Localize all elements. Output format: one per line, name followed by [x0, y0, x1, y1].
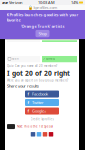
- staticText: Quiz: Can you name all 20 members?: [7, 64, 57, 68]
- staticText: Were you an expert on boy group members?: [7, 79, 68, 82]
- staticText: 10:03 AM: [38, 0, 55, 5]
- staticText: 'Orange Trunk' artists: [20, 24, 64, 29]
- staticText: correct: [46, 57, 55, 60]
- staticText: seen: [12, 57, 19, 60]
- staticText: ▰▰: [2, 0, 8, 5]
- staticText: f: [27, 100, 29, 105]
- staticText: KProfiles launches goodies with your fav…: [6, 12, 78, 23]
- staticText: Facebook: [32, 91, 48, 97]
- button[interactable]: f: [25, 107, 59, 114]
- staticText: f: [27, 91, 29, 97]
- button[interactable]: Share: [49, 132, 53, 136]
- staticText: Share your results: [7, 83, 39, 88]
- button[interactable]: f: [25, 90, 59, 97]
- button[interactable]: Share: [31, 132, 35, 136]
- staticText: Twitter: [32, 100, 44, 105]
- staticText: f: [27, 108, 29, 114]
- staticText: I got 20 of 20 right: [7, 69, 70, 78]
- staticText: 14%: [71, 0, 78, 5]
- button[interactable]: Share: [37, 132, 41, 136]
- staticText: 🔒 kprofiles.com: [27, 5, 57, 10]
- button[interactable]: f: [25, 99, 59, 106]
- staticText: ✓: [43, 57, 45, 60]
- staticText: Next: This is the 1st Special: [17, 125, 53, 128]
- staticText: Credit: kprofiles: [30, 117, 53, 121]
- staticText: Shop: [38, 31, 46, 36]
- staticText: Google+: [32, 108, 46, 114]
- staticText: Verizon: [9, 0, 22, 5]
- button[interactable]: Shop: [35, 30, 49, 37]
- button[interactable]: Share: [43, 132, 47, 136]
